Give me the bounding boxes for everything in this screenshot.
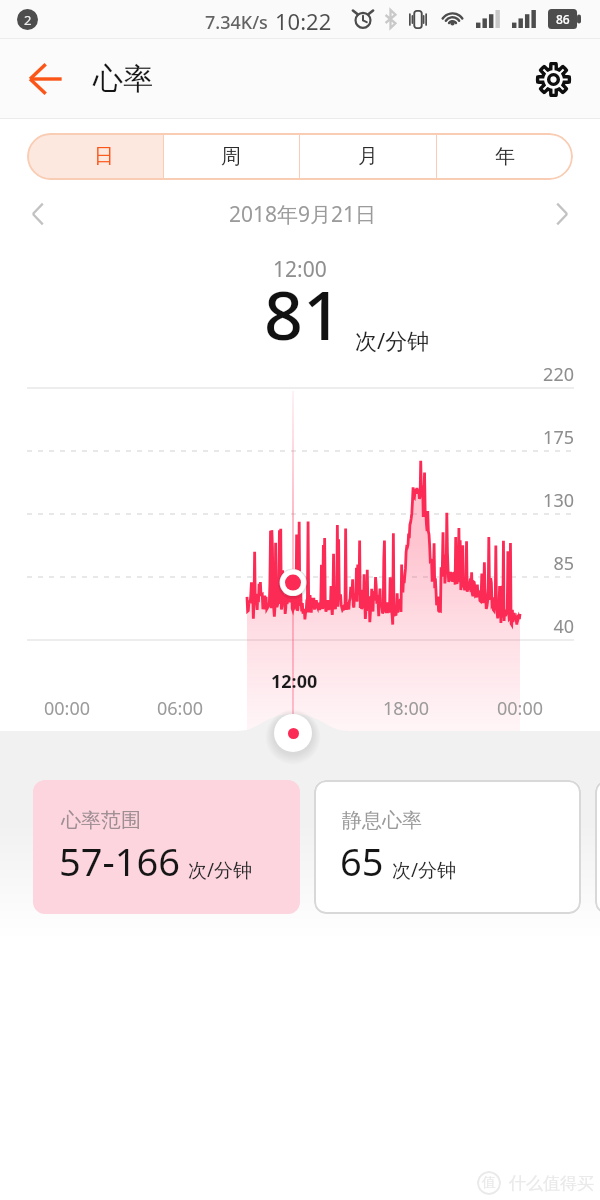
button[interactable]: 日 <box>27 133 163 180</box>
button[interactable]: Previous day <box>18 194 58 234</box>
staticText: 次/分钟 <box>392 857 457 883</box>
staticText: 次/分钟 <box>355 325 430 355</box>
button[interactable]: Settings <box>531 57 575 101</box>
button[interactable]: 周 <box>163 133 299 180</box>
staticText: 年 <box>495 144 515 169</box>
staticText: 00:00 <box>480 696 560 721</box>
staticText: 06:00 <box>140 696 220 721</box>
staticText: 心率范围 <box>61 808 141 833</box>
button[interactable]: 年 <box>436 133 573 180</box>
staticText: 85 <box>474 551 574 576</box>
staticText: 12:00 <box>271 669 318 694</box>
staticText: 18:00 <box>366 696 446 721</box>
staticText: 7.34K/s <box>205 10 268 35</box>
button[interactable]: 心率范围 <box>33 780 300 914</box>
staticText: 40 <box>474 614 574 639</box>
staticText: 86 <box>556 11 570 27</box>
button[interactable]: Next day <box>542 194 582 234</box>
staticText: 心率 <box>93 60 153 98</box>
staticText: 10:22 <box>275 6 332 36</box>
staticText: 静息心率 <box>342 808 422 833</box>
button[interactable]: Heart rate marker <box>274 714 312 752</box>
staticText: 周 <box>221 144 241 169</box>
button[interactable]: 月 <box>299 133 436 180</box>
staticText: 次/分钟 <box>188 857 253 883</box>
staticText: 175 <box>474 425 574 450</box>
staticText: 65 <box>340 835 384 887</box>
staticText: 220 <box>474 362 574 387</box>
staticText: 12:00 <box>273 255 327 284</box>
staticText: 日 <box>94 144 114 169</box>
staticText: 81 <box>264 267 342 360</box>
button[interactable]: 静息心率 <box>314 780 581 914</box>
staticText: 什么值得买 <box>509 1173 594 1194</box>
staticText: 月 <box>358 144 378 169</box>
staticText: 2 <box>24 11 32 29</box>
staticText: 57-166 <box>59 835 180 887</box>
staticText: 2018年9月21日 <box>229 200 377 229</box>
staticText: 值 <box>482 1174 496 1192</box>
staticText: 00:00 <box>27 696 107 721</box>
staticText: 130 <box>474 488 574 513</box>
button[interactable]: Back <box>20 54 70 104</box>
